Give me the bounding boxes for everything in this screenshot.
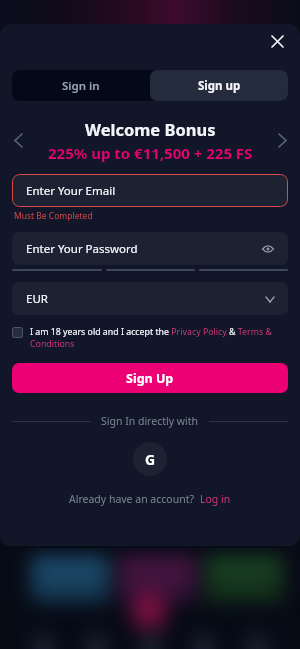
button[interactable]: Close — [263, 27, 291, 55]
button[interactable]: Show password — [257, 238, 279, 260]
staticText: EUR — [26, 291, 48, 307]
button[interactable]: Log in — [200, 492, 231, 506]
staticText: Enter Your Password — [26, 241, 138, 257]
staticText: G — [145, 450, 156, 469]
button[interactable]: Next bonus — [270, 128, 294, 152]
staticText: Welcome Bonus — [85, 118, 216, 140]
staticText: I am 18 years old and I accept the Priva… — [30, 326, 288, 350]
staticText: Log in — [200, 492, 231, 506]
staticText: Must Be Completed — [14, 210, 93, 222]
button[interactable]: Enter Your Password — [12, 232, 288, 265]
staticText: Sign in — [62, 78, 100, 94]
staticText: Sign Up — [126, 370, 174, 387]
button[interactable]: Previous bonus — [6, 128, 30, 152]
button[interactable]: Sign in — [12, 70, 150, 101]
button[interactable]: Sign Up — [12, 363, 288, 393]
staticText: 225% up to €11,500 + 225 FS — [48, 143, 253, 163]
staticText: Sign up — [198, 78, 241, 94]
button[interactable]: Sign in with Google — [133, 442, 167, 476]
button[interactable]: Sign up — [150, 70, 288, 101]
staticText: Already have an account? — [69, 492, 195, 506]
button[interactable]: EUR — [12, 282, 288, 315]
staticText: Sign In directly with — [101, 414, 199, 428]
button[interactable]: Enter Your Email — [12, 174, 288, 207]
button[interactable]: I am 18 years old and I accept the Priva… — [12, 326, 288, 350]
staticText: Enter Your Email — [26, 183, 116, 199]
